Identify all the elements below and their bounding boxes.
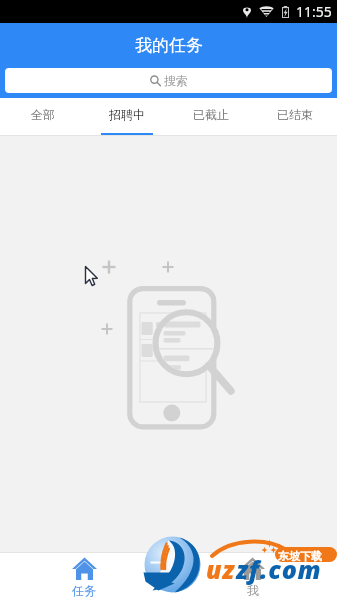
button[interactable]: 招聘中 xyxy=(85,98,169,135)
staticText: 东坡下载 xyxy=(278,549,322,563)
staticText: 已截止 xyxy=(193,107,229,122)
staticText: .com xyxy=(260,552,322,586)
staticText: 全部 xyxy=(31,107,55,122)
staticText: 我 xyxy=(247,583,259,598)
staticText: zf xyxy=(236,552,260,586)
staticText: 已结束 xyxy=(277,107,313,122)
button[interactable]: 已结束 xyxy=(253,98,337,135)
other: 我 xyxy=(240,557,265,580)
staticText: 搜索 xyxy=(164,73,188,88)
staticText: 任务 xyxy=(72,583,96,598)
staticText: 11:55 xyxy=(296,2,332,21)
button[interactable]: 任务 xyxy=(0,553,168,600)
staticText: uz xyxy=(206,552,236,586)
button[interactable]: 搜索 xyxy=(5,68,332,93)
staticText: 招聘中 xyxy=(109,107,145,122)
other: 任务 xyxy=(72,557,97,580)
staticText: 我的任务 xyxy=(135,35,203,56)
button[interactable]: 我 xyxy=(168,553,337,600)
button[interactable]: 全部 xyxy=(0,98,85,135)
button[interactable]: 已截止 xyxy=(169,98,253,135)
